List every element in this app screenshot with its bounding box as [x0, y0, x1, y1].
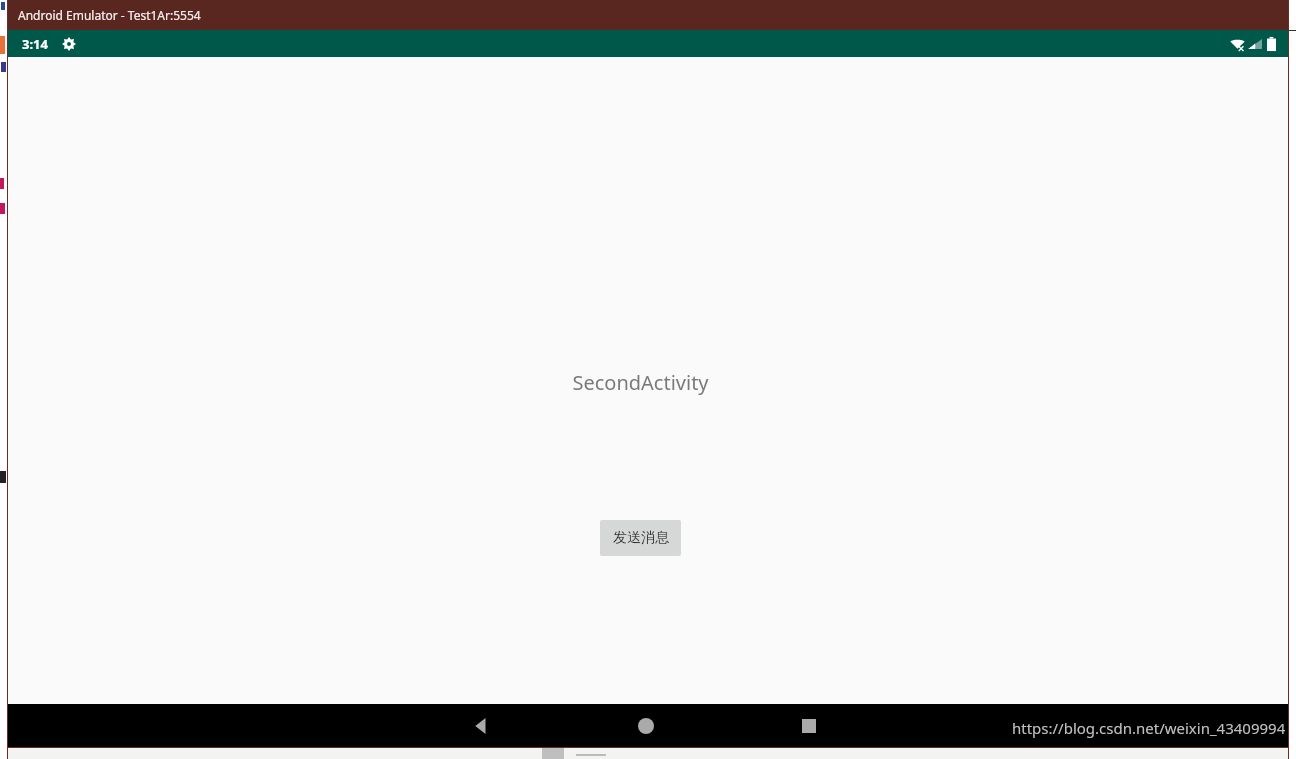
- staticText: 3:14: [22, 35, 48, 53]
- other: Settings: [62, 37, 76, 51]
- button[interactable]: Home: [624, 704, 668, 748]
- staticText: https://blog.csdn.net/weixin_43409994: [1012, 718, 1286, 738]
- button[interactable]: Back: [460, 704, 504, 748]
- button[interactable]: Recent apps: [787, 704, 831, 748]
- staticText: Android Emulator - Test1Ar:5554: [18, 7, 201, 23]
- staticText: 发送消息: [613, 529, 669, 547]
- button[interactable]: 发送消息: [600, 520, 681, 556]
- staticText: SecondActivity: [572, 369, 709, 396]
